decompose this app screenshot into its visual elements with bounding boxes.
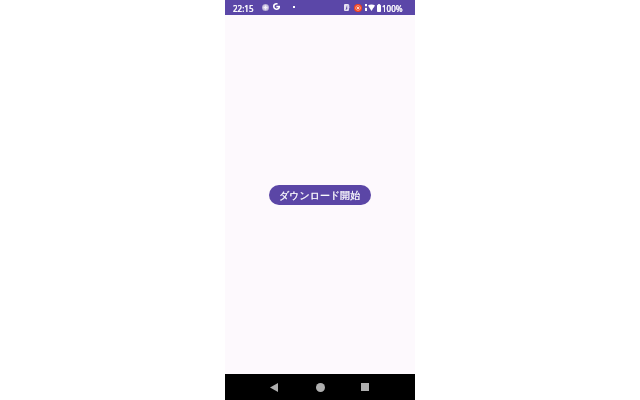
button[interactable]: Back xyxy=(257,374,291,400)
button[interactable]: Recents xyxy=(348,374,382,400)
button[interactable]: ダウンロード開始 xyxy=(269,185,371,205)
button[interactable]: Home xyxy=(303,374,337,400)
staticText: ダウンロード開始 xyxy=(279,189,361,202)
staticText: 100% xyxy=(382,3,403,14)
staticText: 22:15 xyxy=(233,3,254,14)
